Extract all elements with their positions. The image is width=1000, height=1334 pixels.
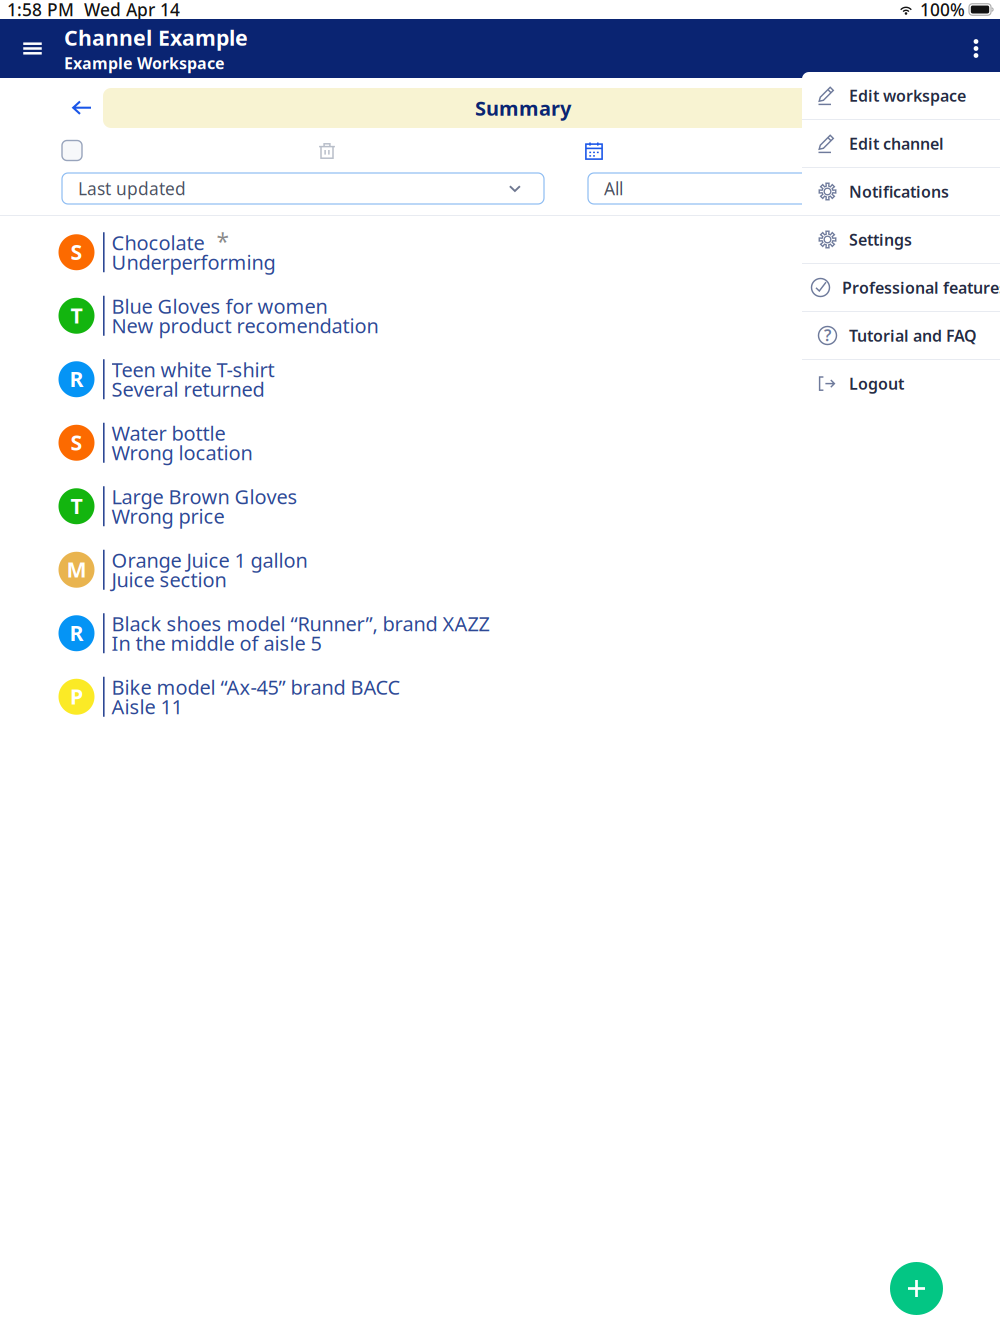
staticText: Blue Gloves for women <box>112 293 328 319</box>
button[interactable]: R <box>0 347 1000 411</box>
staticText: S <box>70 238 82 266</box>
button[interactable]: Delete <box>316 140 338 161</box>
staticText: T <box>70 301 82 329</box>
staticText: Juice section <box>112 566 227 593</box>
button[interactable]: Back <box>62 88 102 128</box>
staticText: Tutorial and FAQ <box>849 325 977 346</box>
staticText: S <box>70 428 82 456</box>
button[interactable]: S <box>0 411 1000 474</box>
button[interactable]: Logout <box>802 360 1000 408</box>
staticText: New product recomendation <box>112 312 379 339</box>
staticText: Notifications <box>849 181 949 202</box>
staticText: R <box>69 619 83 647</box>
staticText: Example Workspace <box>64 52 225 74</box>
staticText: 100% <box>920 0 965 21</box>
staticText: T <box>70 492 82 520</box>
staticText: Wrong price <box>112 503 225 529</box>
button[interactable]: T <box>0 284 1000 347</box>
staticText: M <box>66 555 86 583</box>
staticText: Underperforming <box>112 249 276 275</box>
staticText: 1:58 PM <box>7 0 74 21</box>
staticText: All <box>604 177 623 200</box>
staticText: R <box>69 365 83 393</box>
button[interactable]: S <box>0 220 1000 284</box>
staticText: ? <box>824 324 831 346</box>
staticText: Logout <box>849 373 904 394</box>
button[interactable]: ? <box>802 312 1000 360</box>
button[interactable]: Edit workspace <box>802 72 1000 120</box>
button[interactable]: Menu <box>9 23 56 73</box>
button[interactable]: Edit channel <box>802 120 1000 168</box>
button[interactable]: T <box>0 474 1000 538</box>
button[interactable]: All <box>588 173 1000 204</box>
staticText: In the middle of aisle 5 <box>112 630 322 656</box>
button[interactable]: Notifications <box>802 168 1000 216</box>
button[interactable]: Select all <box>61 140 83 161</box>
staticText: Large Brown Gloves <box>112 483 298 510</box>
button[interactable]: P <box>0 665 1000 728</box>
button[interactable]: R <box>0 601 1000 665</box>
staticText: Edit workspace <box>849 85 966 106</box>
button[interactable]: M <box>0 538 1000 601</box>
staticText: Aisle 11 <box>112 693 183 720</box>
staticText: Chocolate <box>112 229 205 256</box>
staticText: * <box>217 226 229 256</box>
button[interactable]: Settings <box>802 216 1000 264</box>
staticText: Bike model “Ax-45” brand BACC <box>112 674 401 700</box>
staticText: Black shoes model “Runner”, brand XAZZ <box>112 610 490 637</box>
staticText: Wrong location <box>112 439 253 466</box>
button[interactable]: Professional features <box>802 264 1000 312</box>
button[interactable]: More options <box>954 23 998 73</box>
staticText: Channel Example <box>64 23 248 51</box>
staticText: Several returned <box>112 376 265 402</box>
staticText: Summary <box>475 95 571 121</box>
staticText: P <box>70 682 83 710</box>
button[interactable]: Add <box>890 1262 943 1315</box>
staticText: Orange Juice 1 gallon <box>112 547 308 573</box>
staticText: Water bottle <box>112 420 226 446</box>
staticText: Professional features <box>842 277 1000 298</box>
staticText: Settings <box>849 229 912 250</box>
staticText: Wed Apr 14 <box>84 0 180 21</box>
staticText: Teen white T-shirt <box>112 356 275 383</box>
staticText: Edit channel <box>849 133 944 154</box>
button[interactable]: Date range <box>583 140 605 161</box>
button[interactable]: Last updated <box>62 173 544 204</box>
staticText: Last updated <box>78 177 186 200</box>
